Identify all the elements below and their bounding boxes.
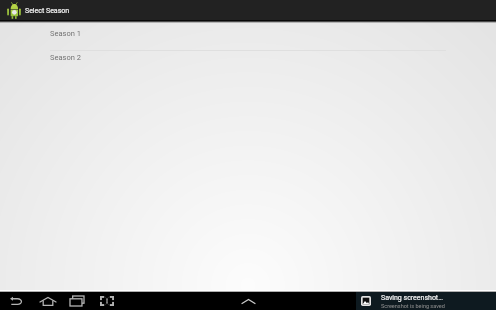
staticText: Season 2	[50, 53, 81, 62]
staticText: Season 1	[50, 29, 81, 38]
button[interactable]: Saving screenshot…	[356, 292, 496, 310]
button[interactable]: Screenshot	[96, 292, 117, 310]
staticText: Screenshot is being saved	[381, 303, 445, 309]
button[interactable]: Season 2	[0, 51, 496, 74]
button[interactable]: Expand notifications	[238, 292, 258, 310]
staticText: Select Season	[25, 7, 70, 15]
button[interactable]: Back	[6, 292, 27, 310]
staticText: Saving screenshot…	[381, 294, 443, 302]
button[interactable]: Home	[37, 292, 58, 310]
button[interactable]: Recent apps	[66, 292, 87, 310]
button[interactable]: Season 1	[0, 27, 496, 50]
